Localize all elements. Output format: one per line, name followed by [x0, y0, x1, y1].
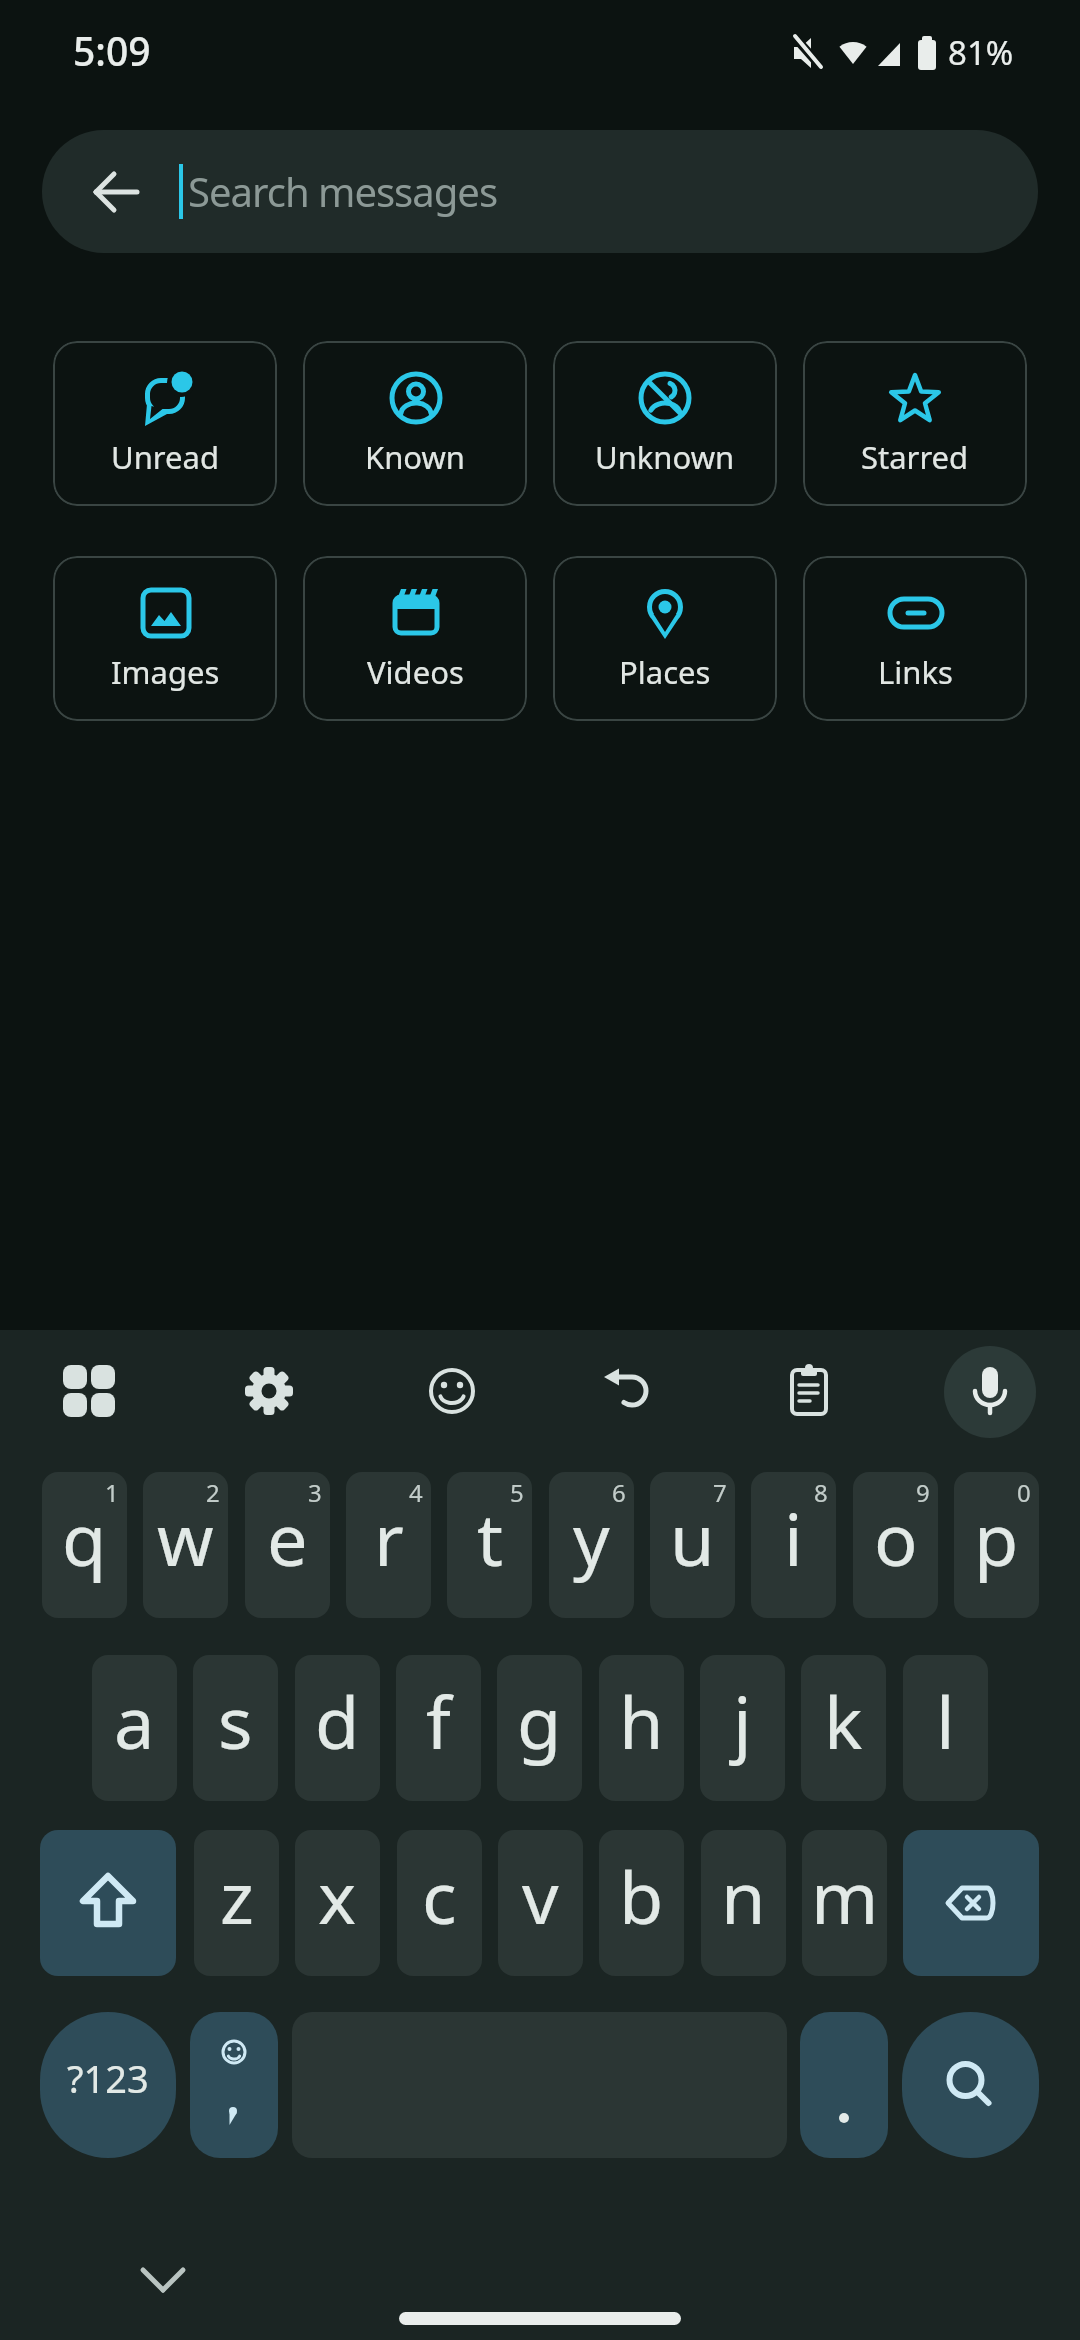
button[interactable] — [417, 1356, 487, 1426]
button[interactable]: x — [295, 1830, 380, 1976]
staticText: d — [315, 1672, 360, 1770]
staticText: Links — [878, 651, 953, 693]
button[interactable]: c — [397, 1830, 482, 1976]
button[interactable]: d — [295, 1655, 380, 1801]
button[interactable]: Links — [803, 556, 1027, 721]
button[interactable]: ?123 — [40, 2012, 176, 2158]
button[interactable]: t — [447, 1472, 532, 1618]
staticText: Known — [365, 436, 466, 478]
button[interactable]: w — [143, 1472, 228, 1618]
staticText: Places — [619, 651, 711, 693]
button[interactable]: r — [346, 1472, 431, 1618]
staticText: 4 — [409, 1476, 423, 1509]
staticText: Starred — [861, 436, 969, 478]
staticText: k — [824, 1672, 863, 1770]
staticText: s — [218, 1672, 253, 1770]
staticText: 6 — [612, 1476, 626, 1509]
staticText: l — [936, 1672, 955, 1770]
staticText: z — [220, 1847, 254, 1945]
button[interactable]: b — [599, 1830, 684, 1976]
button[interactable] — [902, 2012, 1039, 2158]
button[interactable] — [190, 2012, 278, 2158]
button[interactable]: a — [92, 1655, 177, 1801]
button[interactable]: Images — [53, 556, 277, 721]
button[interactable]: Starred — [803, 341, 1027, 506]
staticText: Unknown — [595, 436, 735, 478]
staticText: h — [619, 1672, 664, 1770]
staticText: f — [426, 1672, 451, 1770]
staticText: n — [721, 1847, 766, 1945]
staticText: 81% — [948, 30, 1014, 75]
button[interactable]: s — [193, 1655, 278, 1801]
button[interactable]: v — [498, 1830, 583, 1976]
button[interactable]: Search messages — [42, 130, 1038, 253]
button[interactable] — [595, 1356, 665, 1426]
button[interactable]: y — [549, 1472, 634, 1618]
staticText: Search messages — [188, 164, 498, 218]
button[interactable]: Places — [553, 556, 777, 721]
button[interactable]: u — [650, 1472, 735, 1618]
button[interactable]: i — [751, 1472, 836, 1618]
button[interactable] — [130, 2255, 196, 2305]
button[interactable]: Unread — [53, 341, 277, 506]
staticText: x — [318, 1847, 357, 1945]
staticText: j — [733, 1672, 752, 1770]
button[interactable] — [234, 1356, 304, 1426]
staticText: r — [374, 1489, 404, 1587]
staticText: 1 — [105, 1476, 119, 1509]
staticText: 0 — [1017, 1476, 1031, 1509]
staticText: m — [811, 1847, 879, 1945]
button[interactable] — [903, 1830, 1039, 1976]
button[interactable]: Known — [303, 341, 527, 506]
button[interactable]: h — [599, 1655, 684, 1801]
button[interactable]: o — [853, 1472, 938, 1618]
staticText: 5:09 — [73, 24, 151, 77]
staticText: 7 — [713, 1476, 727, 1509]
staticText: p — [974, 1489, 1019, 1587]
staticText: o — [874, 1489, 918, 1587]
button[interactable]: Unknown — [553, 341, 777, 506]
staticText: 8 — [814, 1476, 828, 1509]
staticText: g — [517, 1672, 562, 1770]
button[interactable]: p — [954, 1472, 1039, 1618]
staticText: c — [422, 1847, 457, 1945]
button[interactable]: Videos — [303, 556, 527, 721]
staticText: 5 — [510, 1476, 524, 1509]
staticText: w — [157, 1489, 214, 1587]
button[interactable] — [944, 1346, 1036, 1438]
button[interactable]: j — [700, 1655, 785, 1801]
staticText: v — [522, 1847, 559, 1945]
button[interactable]: f — [396, 1655, 481, 1801]
staticText: 2 — [206, 1476, 220, 1509]
button[interactable]: m — [802, 1830, 887, 1976]
button[interactable]: e — [245, 1472, 330, 1618]
staticText: q — [62, 1489, 107, 1587]
staticText: e — [267, 1489, 308, 1587]
staticText: t — [477, 1489, 503, 1587]
staticText: ?123 — [67, 2052, 149, 2104]
button[interactable] — [774, 1356, 844, 1426]
button[interactable] — [800, 2012, 888, 2158]
staticText: i — [784, 1489, 803, 1587]
staticText: y — [573, 1489, 610, 1587]
button[interactable]: g — [497, 1655, 582, 1801]
button[interactable] — [40, 1830, 176, 1976]
staticText: u — [670, 1489, 715, 1587]
staticText: 9 — [916, 1476, 930, 1509]
staticText: Unread — [111, 436, 219, 478]
button[interactable]: z — [194, 1830, 279, 1976]
staticText: 3 — [308, 1476, 322, 1509]
staticText: b — [619, 1847, 664, 1945]
staticText: a — [114, 1672, 155, 1770]
button[interactable]: n — [701, 1830, 786, 1976]
button[interactable]: l — [903, 1655, 988, 1801]
button[interactable]: q — [42, 1472, 127, 1618]
staticText: Images — [111, 651, 220, 693]
button[interactable]: k — [801, 1655, 886, 1801]
button[interactable] — [54, 1356, 124, 1426]
staticText: Videos — [367, 651, 464, 693]
